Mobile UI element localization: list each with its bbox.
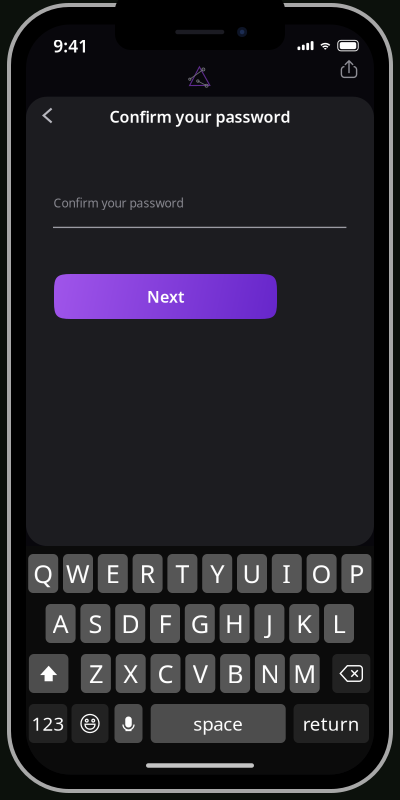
button[interactable]: Back <box>28 95 68 135</box>
staticText: B <box>227 657 243 690</box>
staticText: 9:41 <box>53 34 88 57</box>
button[interactable]: L <box>324 604 354 643</box>
button[interactable]: Share <box>332 53 366 85</box>
button[interactable]: Delete <box>332 654 370 693</box>
staticText: F <box>158 607 171 640</box>
button[interactable]: N <box>255 654 285 693</box>
staticText: R <box>140 557 156 590</box>
button[interactable]: U <box>237 554 267 593</box>
staticText: Z <box>89 657 103 690</box>
button[interactable]: 123 <box>29 704 67 743</box>
staticText: Confirm your password <box>53 195 183 211</box>
button[interactable]: S <box>80 604 110 643</box>
button[interactable]: A <box>46 604 76 643</box>
button[interactable]: D <box>115 604 145 643</box>
button[interactable]: R <box>133 554 163 593</box>
button[interactable]: T <box>167 554 197 593</box>
button[interactable]: Z <box>81 654 111 693</box>
staticText: U <box>242 557 261 590</box>
button[interactable]: H <box>220 604 250 643</box>
staticText: Confirm your password <box>109 106 290 127</box>
button[interactable]: B <box>220 654 250 693</box>
button[interactable]: C <box>150 654 180 693</box>
button[interactable]: M <box>290 654 320 693</box>
staticText: C <box>157 657 173 690</box>
button[interactable]: P <box>341 554 371 593</box>
button[interactable]: I <box>272 554 302 593</box>
button[interactable]: X <box>116 654 146 693</box>
staticText: K <box>296 607 312 640</box>
button[interactable]: G <box>185 604 215 643</box>
button[interactable]: space <box>151 704 286 743</box>
staticText: space <box>193 711 243 736</box>
staticText: V <box>193 657 208 690</box>
button[interactable]: Q <box>28 554 58 593</box>
staticText: I <box>282 557 291 590</box>
staticText: N <box>260 657 279 690</box>
staticText: P <box>349 557 364 590</box>
staticText: D <box>121 607 139 640</box>
button[interactable]: Emoji <box>71 704 108 743</box>
button[interactable]: Dictation <box>114 704 142 743</box>
button[interactable]: Y <box>202 554 232 593</box>
staticText: Q <box>33 557 53 590</box>
staticText: L <box>332 607 345 640</box>
staticText: Y <box>210 557 224 590</box>
staticText: H <box>225 607 244 640</box>
staticText: S <box>88 607 102 640</box>
button[interactable]: W <box>63 554 93 593</box>
button[interactable]: Next <box>54 274 277 319</box>
staticText: G <box>191 607 209 640</box>
staticText: A <box>53 607 69 640</box>
button[interactable]: Shift <box>29 654 68 693</box>
staticText: 123 <box>31 711 64 736</box>
button[interactable]: V <box>185 654 215 693</box>
staticText: W <box>66 557 90 590</box>
staticText: M <box>293 657 316 690</box>
button[interactable]: K <box>289 604 319 643</box>
staticText: X <box>123 657 138 690</box>
button[interactable]: return <box>294 704 369 743</box>
staticText: O <box>312 557 332 590</box>
staticText: E <box>106 557 120 590</box>
button[interactable]: J <box>254 604 284 643</box>
staticText: return <box>303 711 360 736</box>
button[interactable]: F <box>150 604 180 643</box>
button[interactable]: O <box>307 554 337 593</box>
staticText: J <box>266 607 273 640</box>
staticText: T <box>175 557 189 590</box>
button[interactable]: E <box>98 554 128 593</box>
staticText: Next <box>147 286 184 307</box>
